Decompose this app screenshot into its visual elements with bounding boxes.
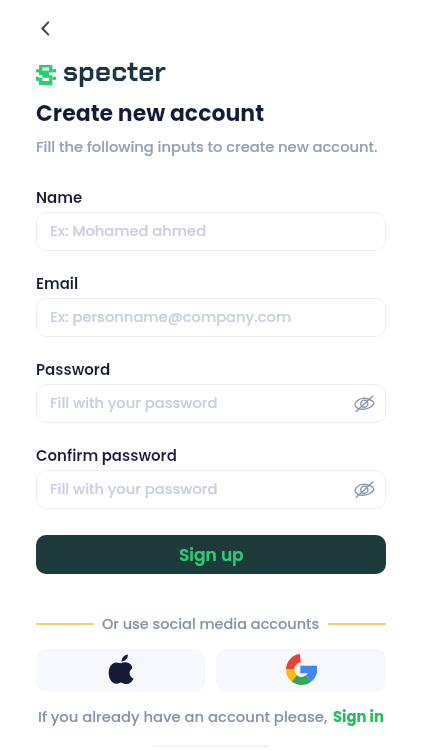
staticText: Create new account [36,98,265,129]
button[interactable]: Ex: personname@company.com [36,298,386,337]
staticText: Sign up [179,543,244,567]
staticText: Fill the following inputs to create new … [36,137,378,158]
staticText: Name [36,187,83,208]
staticText: Ex: Mohamed ahmed [50,221,207,242]
button[interactable]: Ex: Mohamed ahmed [36,212,386,251]
staticText: Email [36,273,79,294]
staticText: Fill with your password [50,393,218,414]
staticText: Confirm password [36,445,177,466]
staticText: Sign in [333,706,384,727]
button[interactable]: Sign in [333,706,384,727]
button[interactable]: Fill with your password [36,470,386,509]
button[interactable]: Show password [352,478,376,502]
staticText: If you already have an account please, [38,706,328,727]
button[interactable]: Sign up with Apple [36,649,205,692]
button[interactable]: Sign up with Google [216,649,386,692]
button[interactable]: Show password [352,392,376,416]
button[interactable]: Fill with your password [36,384,386,423]
staticText: Password [36,359,111,380]
staticText: Or use social media accounts [102,614,320,634]
staticText: Fill with your password [50,479,218,500]
button[interactable]: Back [32,15,58,41]
staticText: Ex: personname@company.com [50,307,292,328]
staticText: specter [63,53,166,89]
button[interactable]: Sign up [36,535,386,574]
